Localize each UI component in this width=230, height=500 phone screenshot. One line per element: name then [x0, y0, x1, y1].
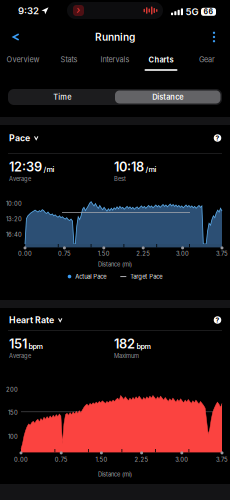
staticText: 10:18 — [114, 159, 144, 174]
staticText: 182 — [114, 336, 135, 351]
staticText: bpm — [136, 342, 150, 351]
staticText: Overview — [6, 55, 39, 64]
staticText: Intervals — [100, 55, 129, 64]
staticText: Running — [95, 31, 135, 43]
staticText: Distance (mi) — [98, 261, 132, 268]
staticText: Stats — [60, 55, 77, 64]
staticText: ? — [215, 134, 219, 142]
staticText: 0.75 — [58, 250, 71, 257]
staticText: 150 — [8, 409, 18, 416]
staticText: ? — [215, 316, 219, 324]
staticText: Heart Rate — [9, 315, 54, 325]
staticText: 16:40 — [6, 231, 22, 238]
staticText: /mi — [145, 165, 156, 174]
staticText: 200 — [6, 386, 18, 393]
staticText: 100 — [8, 433, 18, 440]
button[interactable]: Intervals — [92, 53, 138, 73]
button[interactable]: Distance — [115, 90, 220, 103]
staticText: 66 — [203, 8, 213, 16]
staticText: 9:32 — [18, 5, 39, 17]
staticText: Average — [9, 175, 31, 182]
button[interactable]: Pace — [9, 130, 39, 146]
button[interactable]: Gear — [184, 53, 230, 73]
staticText: Distance (mi) — [98, 471, 132, 478]
staticText: 0.75 — [55, 456, 68, 463]
button[interactable]: Charts — [138, 53, 184, 73]
staticText: 5G — [185, 6, 198, 18]
staticText: 1.50 — [95, 456, 107, 463]
staticText: 13:20 — [6, 215, 22, 223]
staticText: Gear — [199, 55, 215, 64]
button[interactable]: Back — [3, 26, 29, 48]
staticText: Charts — [148, 55, 173, 64]
staticText: 2.25 — [135, 456, 149, 463]
staticText: 0.00 — [14, 456, 28, 463]
staticText: Average — [9, 352, 31, 359]
staticText: 2.25 — [136, 250, 150, 257]
staticText: Time — [53, 92, 71, 101]
staticText: 3.00 — [175, 456, 188, 463]
staticText: 1.50 — [98, 250, 110, 257]
staticText: /mi — [43, 165, 54, 174]
button[interactable]: Time — [9, 90, 115, 103]
button[interactable]: More options — [201, 26, 227, 48]
staticText: 10:00 — [6, 200, 22, 207]
staticText: 3.75 — [216, 250, 228, 257]
staticText: 3.75 — [216, 456, 228, 463]
staticText: 3.00 — [176, 250, 189, 257]
button[interactable]: Help — [211, 131, 224, 144]
button[interactable]: Heart Rate — [9, 312, 63, 328]
staticText: Distance — [152, 92, 183, 101]
staticText: Target Pace — [130, 273, 162, 280]
staticText: 0.00 — [18, 250, 32, 257]
staticText: Best — [114, 175, 126, 182]
staticText: 12:39 — [9, 159, 42, 174]
staticText: Maximum — [114, 352, 139, 359]
staticText: Actual Pace — [75, 273, 106, 280]
staticText: bpm — [28, 342, 42, 351]
button[interactable]: Help — [211, 313, 224, 326]
button[interactable]: Overview — [0, 53, 46, 73]
staticText: 151 — [9, 336, 27, 351]
staticText: Pace — [9, 133, 30, 143]
button[interactable]: Stats — [46, 53, 92, 73]
